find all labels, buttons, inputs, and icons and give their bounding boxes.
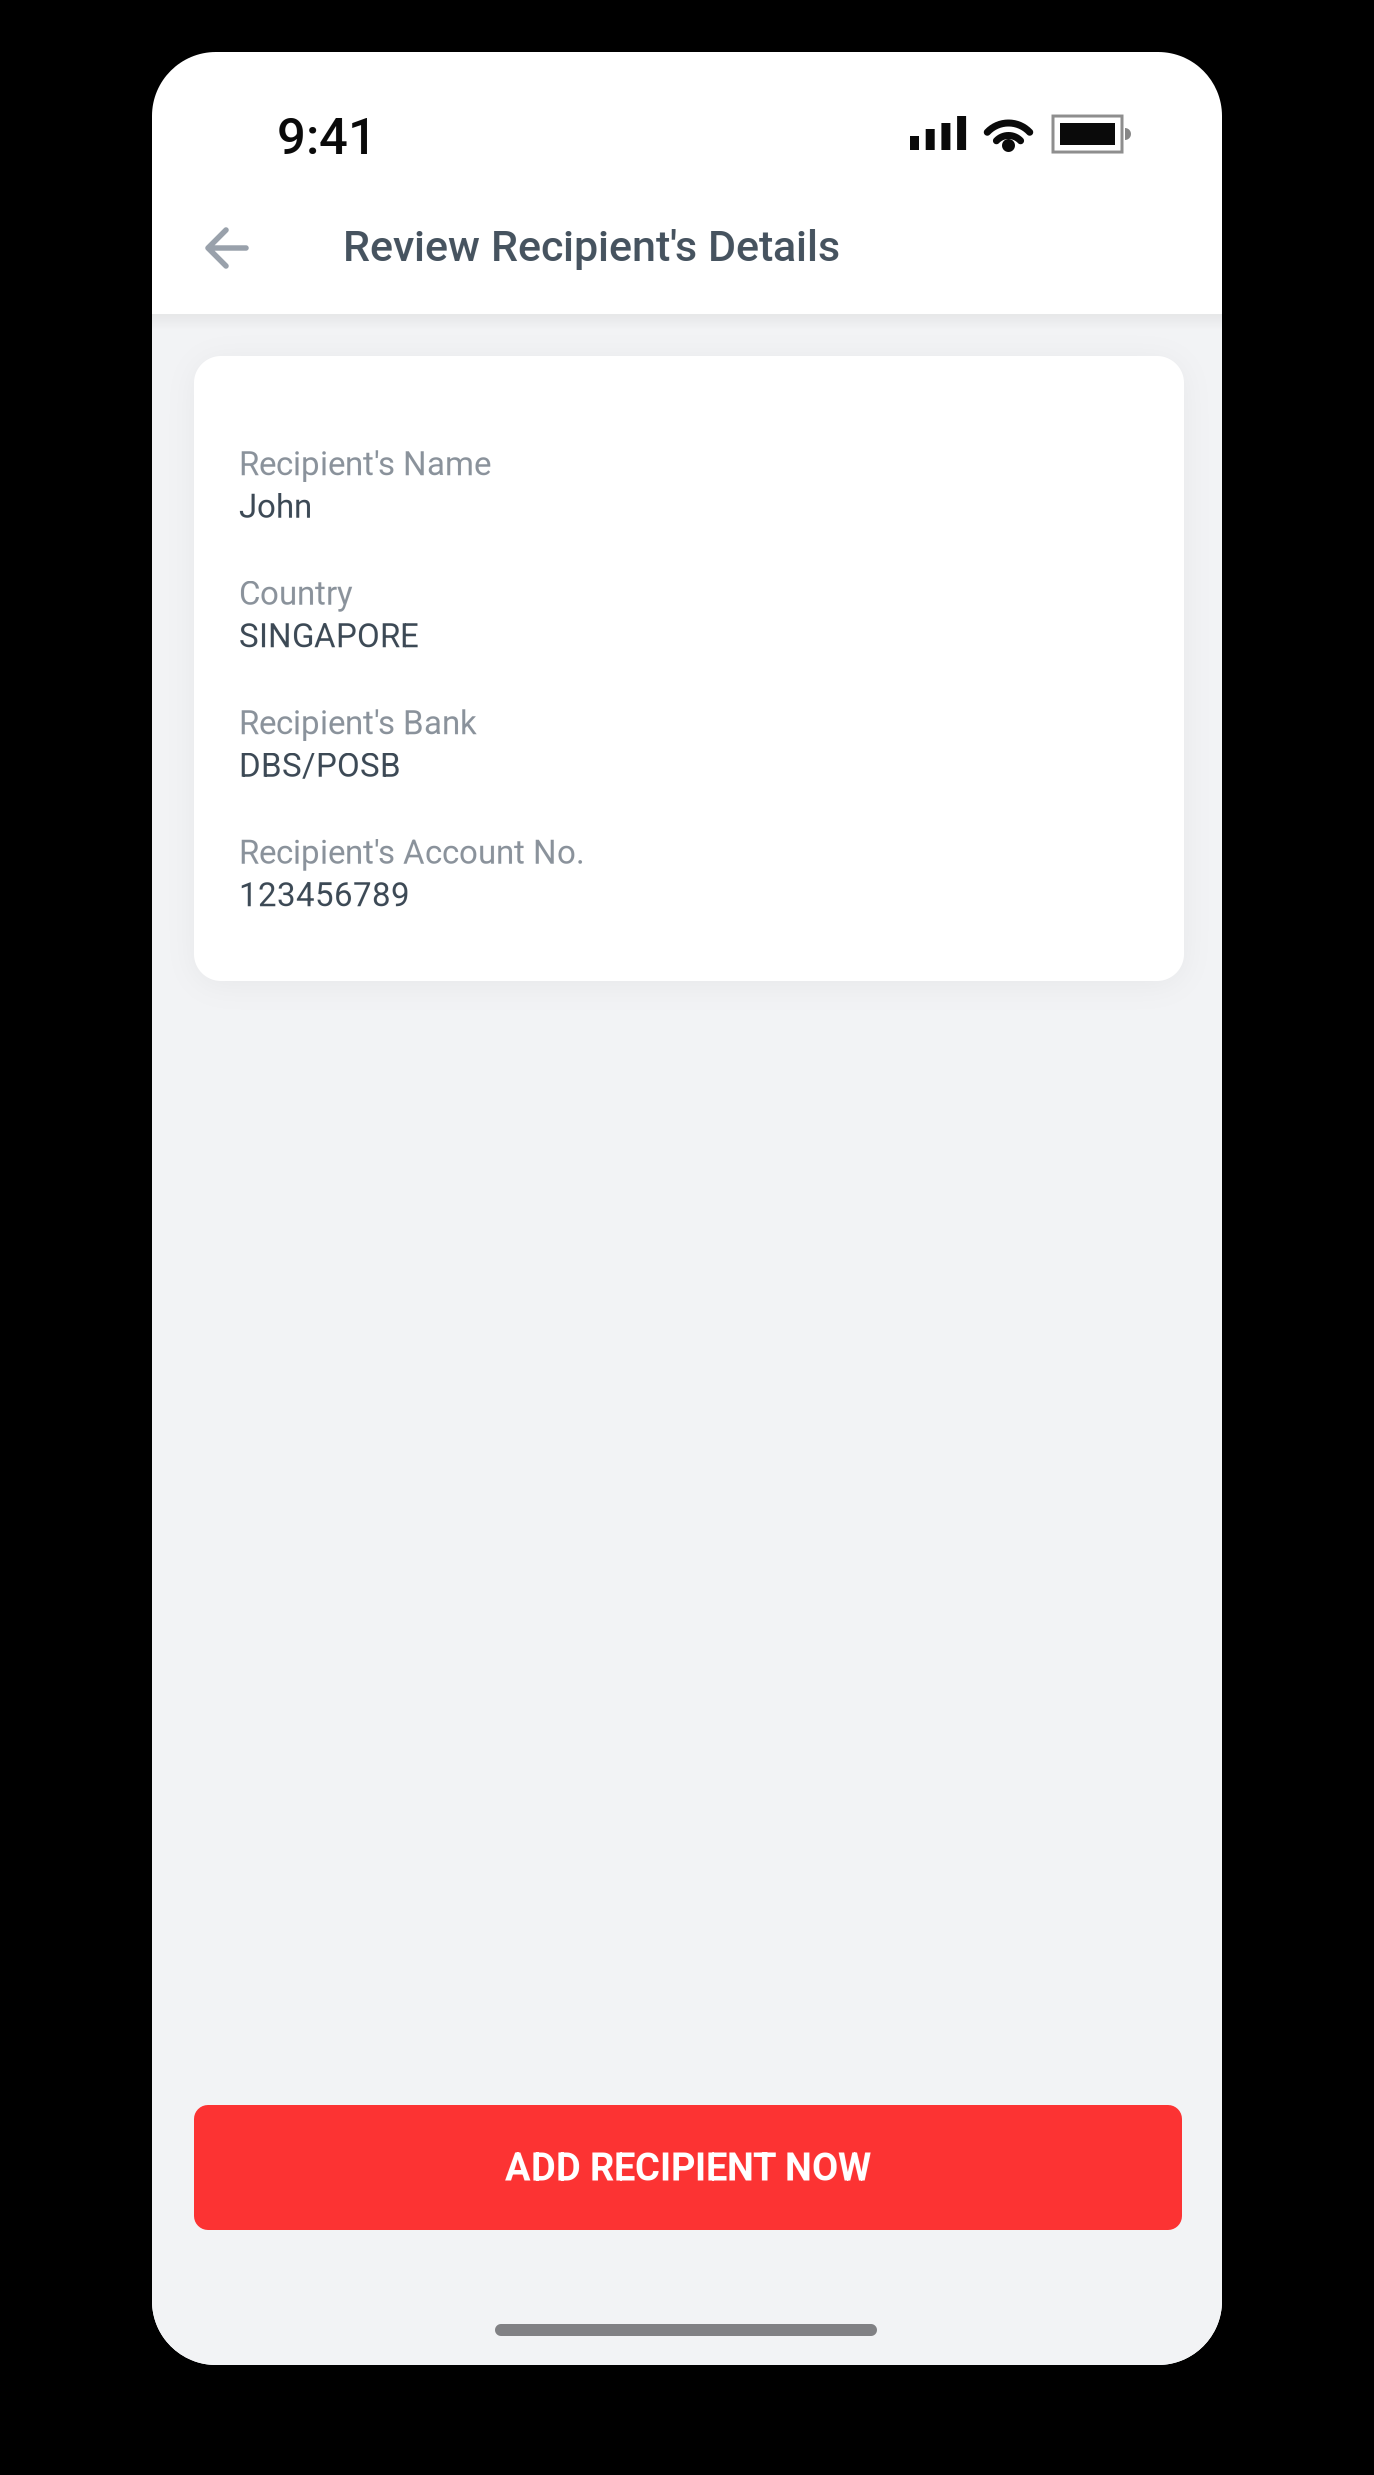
staticText: 9:41 — [277, 107, 377, 166]
staticText: 123456789 — [239, 876, 410, 914]
staticText: ADD RECIPIENT NOW — [505, 2145, 871, 2190]
staticText: SINGAPORE — [239, 617, 419, 655]
staticText: Review Recipient's Details — [343, 221, 840, 271]
staticText: Recipient's Name — [239, 445, 491, 483]
staticText: Recipient's Account No. — [239, 833, 585, 872]
staticText: Country — [239, 574, 353, 613]
staticText: DBS/POSB — [239, 746, 401, 785]
staticText: John — [239, 487, 312, 526]
button[interactable]: ADD RECIPIENT NOW — [194, 2105, 1182, 2230]
button[interactable]: Back — [186, 200, 270, 296]
staticText: Recipient's Bank — [239, 704, 477, 742]
